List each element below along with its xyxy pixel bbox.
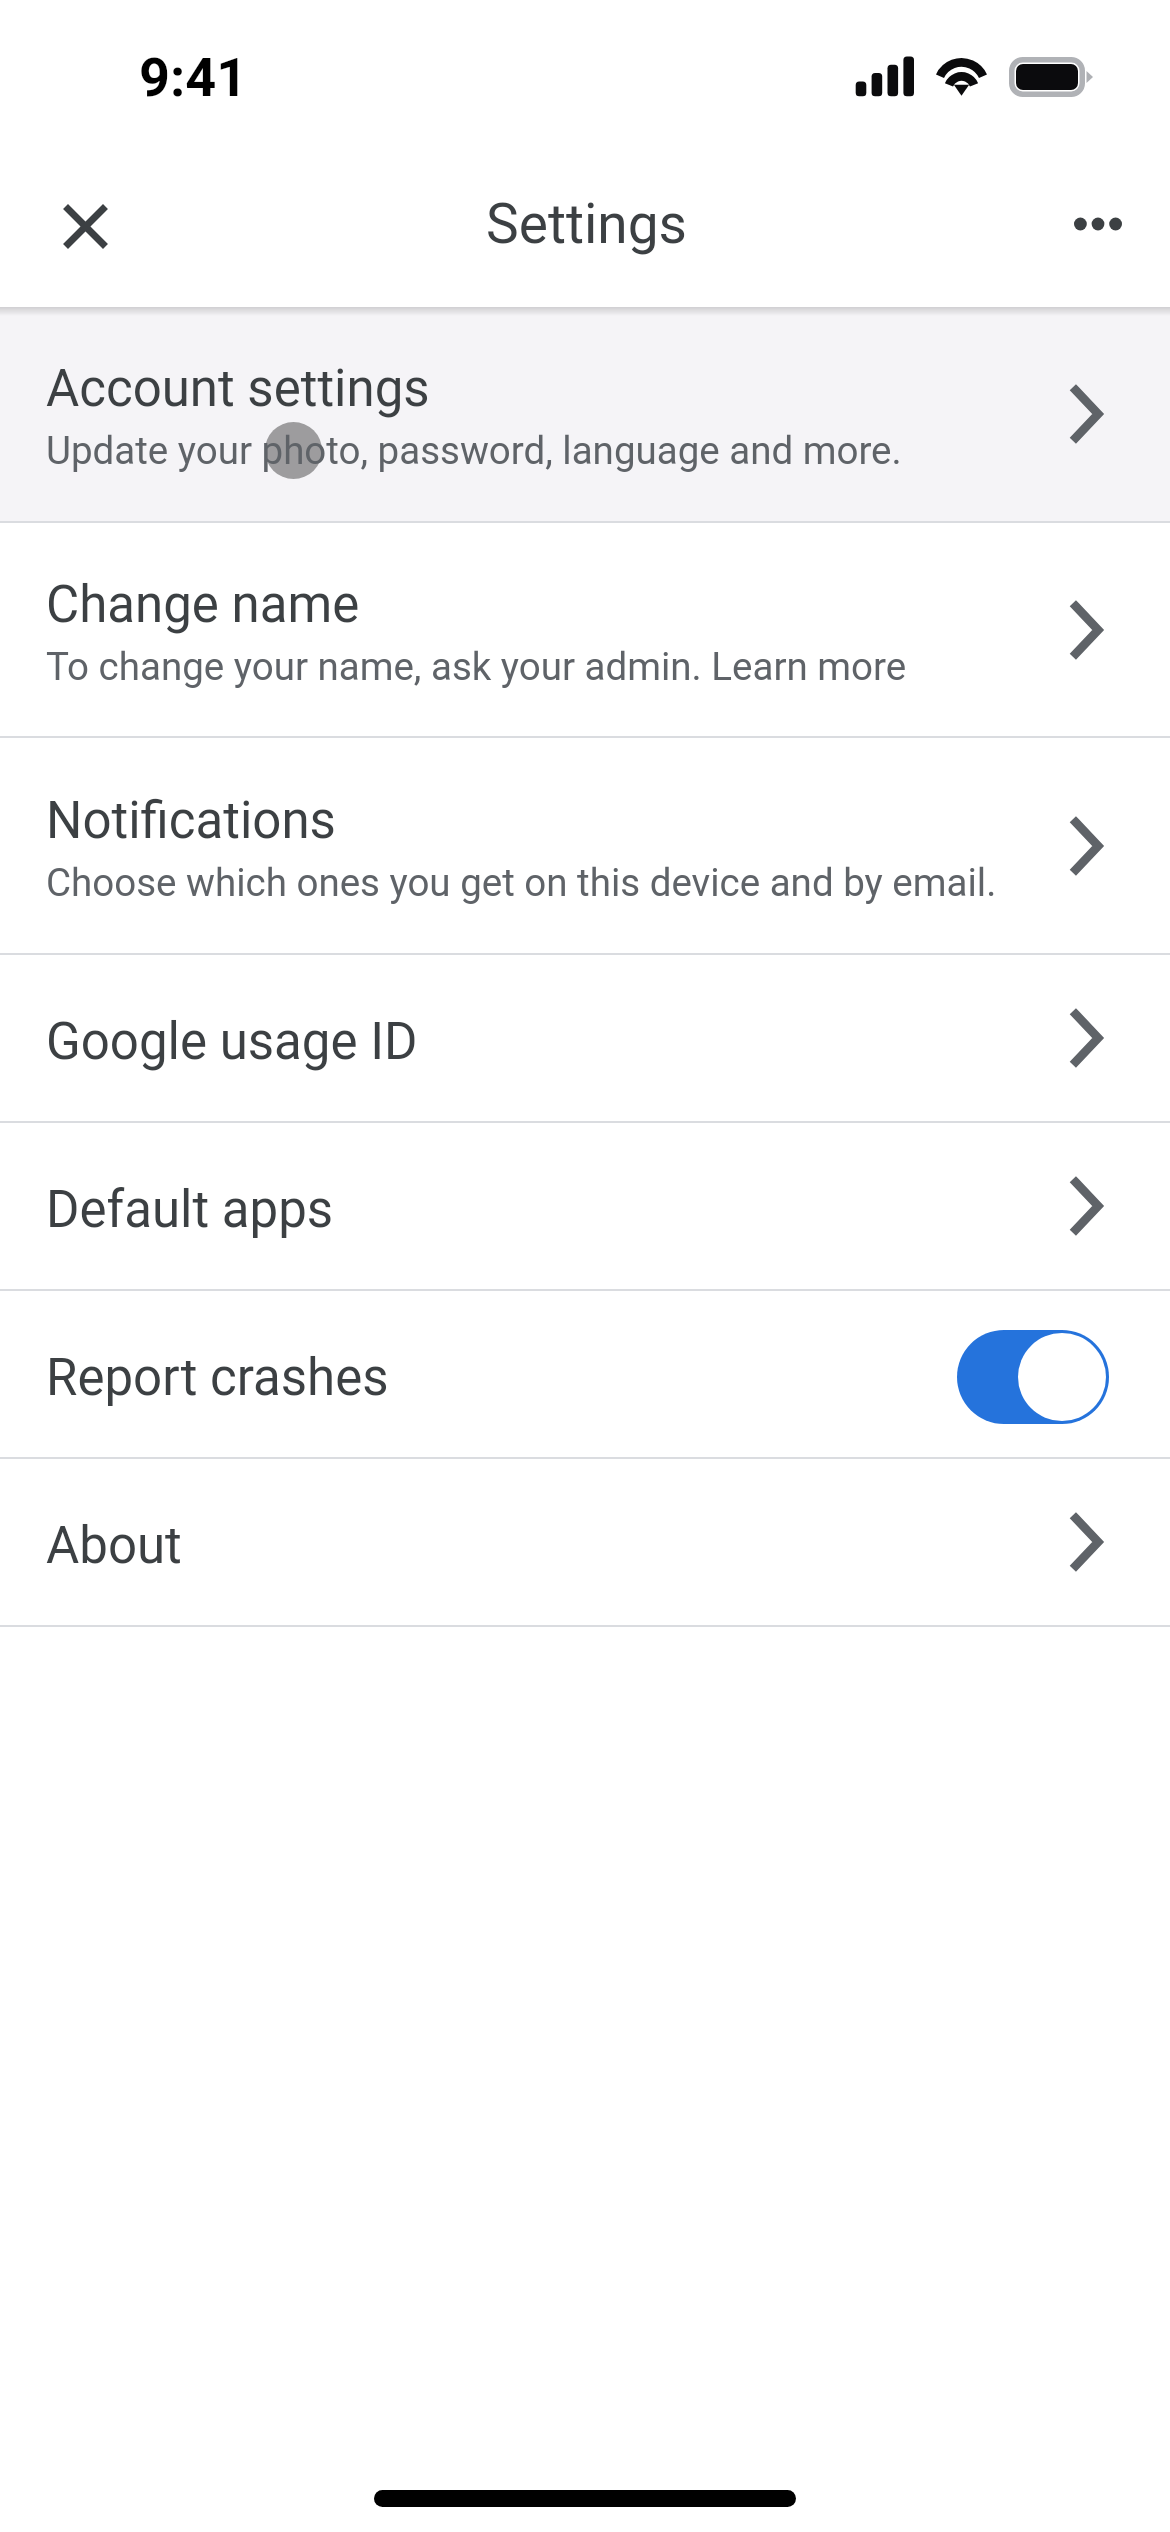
- staticText: To change your name, ask your admin. Lea…: [46, 644, 907, 689]
- button[interactable]: Account settings: [0, 307, 1170, 521]
- button[interactable]: More options: [1040, 171, 1156, 287]
- staticText: Report crashes: [46, 1348, 957, 1408]
- staticText: About: [46, 1516, 182, 1576]
- button[interactable]: Change name: [0, 523, 1170, 736]
- button[interactable]: Notifications: [0, 738, 1170, 953]
- button[interactable]: Report crashes toggle, on: [957, 1330, 1109, 1424]
- staticText: Notifications: [46, 791, 336, 851]
- button[interactable]: About: [0, 1459, 1170, 1625]
- staticText: Change name: [46, 575, 360, 635]
- staticText: Choose which ones you get on this device…: [46, 860, 997, 905]
- staticText: Default apps: [46, 1180, 334, 1240]
- staticText: Update your photo, password, language an…: [46, 428, 902, 473]
- staticText: Google usage ID: [46, 1012, 418, 1072]
- button[interactable]: Report crashes: [0, 1291, 1170, 1457]
- staticText: 9:41: [139, 46, 248, 109]
- staticText: Settings: [486, 192, 687, 256]
- button[interactable]: Default apps: [0, 1123, 1170, 1289]
- button[interactable]: Close: [27, 171, 143, 287]
- staticText: Account settings: [46, 359, 430, 419]
- button[interactable]: Google usage ID: [0, 955, 1170, 1121]
